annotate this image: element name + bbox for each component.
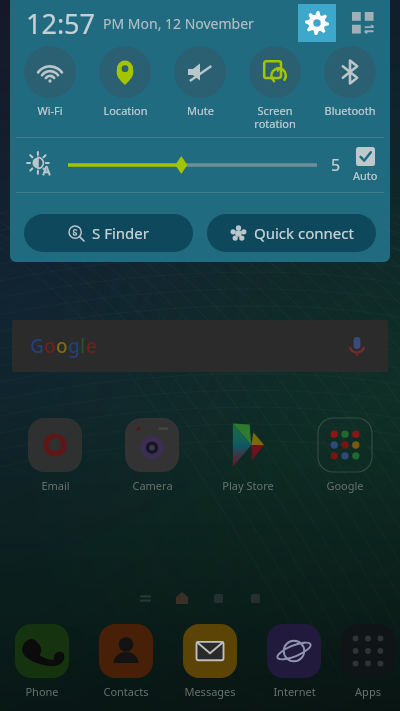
- button[interactable]: [68, 150, 317, 180]
- button[interactable]: Location: [88, 46, 162, 118]
- staticText: Wi-Fi: [37, 103, 63, 118]
- staticText: Mute: [187, 103, 214, 118]
- staticText: Camera: [132, 478, 173, 493]
- staticText: Internet: [273, 684, 316, 699]
- button[interactable]: Mute: [163, 46, 237, 118]
- staticText: Location: [103, 103, 148, 118]
- staticText: S Finder: [92, 223, 149, 243]
- button[interactable]: Email: [13, 418, 97, 493]
- button[interactable]: Contacts: [84, 624, 168, 699]
- button[interactable]: Settings: [298, 4, 336, 42]
- button[interactable]: Apps: [336, 624, 400, 699]
- staticText: Google: [326, 478, 364, 493]
- staticText: Bluetooth: [324, 103, 376, 118]
- staticText: Screen rotation: [254, 103, 296, 131]
- staticText: Phone: [25, 684, 59, 699]
- staticText: e: [86, 333, 97, 359]
- staticText: G: [30, 333, 44, 359]
- button[interactable]: Quick connect: [207, 214, 376, 252]
- staticText: Messages: [184, 684, 236, 699]
- staticText: Play Store: [222, 478, 274, 493]
- button[interactable]: Play Store: [206, 418, 290, 493]
- staticText: Email: [41, 478, 70, 493]
- staticText: 5: [331, 154, 341, 176]
- staticText: Contacts: [103, 684, 149, 699]
- button[interactable]: Google: [303, 418, 387, 493]
- staticText: Quick connect: [254, 223, 354, 243]
- button[interactable]: Auto brightness: [24, 149, 56, 181]
- button[interactable]: Messages: [168, 624, 252, 699]
- other: Voice search: [344, 333, 370, 359]
- staticText: l: [80, 333, 86, 359]
- staticText: g: [68, 333, 80, 359]
- button[interactable]: Internet: [252, 624, 336, 699]
- button[interactable]: Camera: [110, 418, 194, 493]
- staticText: Auto: [353, 168, 378, 183]
- button[interactable]: Bluetooth: [313, 46, 387, 118]
- staticText: Apps: [355, 684, 381, 699]
- button[interactable]: S Finder: [24, 214, 193, 252]
- button[interactable]: Edit quick settings: [346, 6, 380, 40]
- staticText: o: [44, 333, 56, 359]
- button[interactable]: Wi-Fi: [13, 46, 87, 118]
- staticText: 12:57: [26, 5, 96, 42]
- staticText: o: [56, 333, 68, 359]
- button[interactable]: Phone: [0, 624, 84, 699]
- button[interactable]: Screen rotation: [238, 46, 312, 131]
- staticText: PM Mon, 12 November: [103, 14, 254, 33]
- button[interactable]: Auto: [353, 147, 378, 183]
- button[interactable]: G: [12, 320, 388, 372]
